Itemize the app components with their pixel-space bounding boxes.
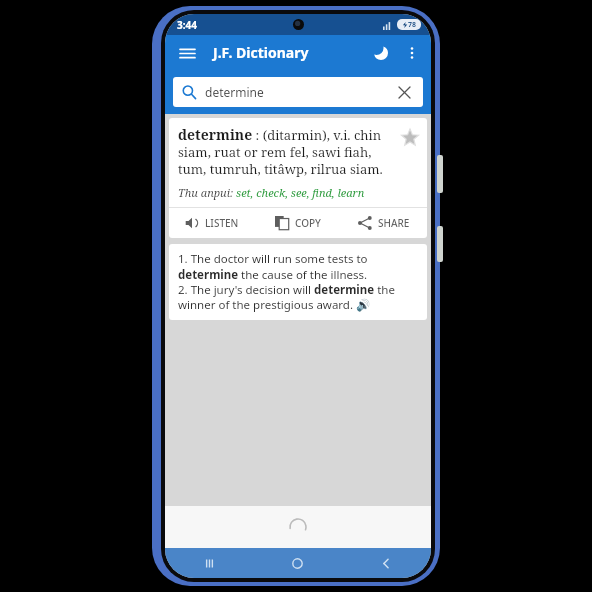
button[interactable]: More options [397, 38, 427, 68]
staticText: determine : (ditarmin), v.i. chin siam, … [178, 125, 397, 178]
button[interactable]: Toggle dark mode [365, 37, 397, 69]
staticText: LISTEN [205, 216, 239, 230]
button[interactable]: COPY [255, 208, 341, 238]
button[interactable]: Open navigation drawer [171, 37, 203, 69]
button[interactable]: LISTEN [169, 208, 255, 238]
staticText: COPY [295, 216, 321, 230]
staticText: 3:44 [177, 18, 197, 32]
button[interactable]: 1. The doctor will run some tests to det… [169, 244, 427, 320]
staticText: determine [205, 84, 264, 100]
staticText: 78 [408, 20, 417, 30]
button[interactable]: Clear search [394, 82, 414, 102]
staticText: 1. The doctor will run some tests to det… [178, 251, 418, 312]
button[interactable]: Back [342, 548, 431, 578]
button[interactable]: Recents [165, 548, 253, 578]
button[interactable]: Add to favourites [397, 125, 423, 151]
button[interactable]: Home [253, 548, 342, 578]
staticText: J.F. Dictionary [213, 43, 309, 62]
staticText: Thu anpui: set, check, see, find, learn [178, 185, 365, 200]
button[interactable]: determine : (ditarmin), v.i. chin siam, … [169, 118, 427, 238]
button[interactable]: determine [173, 77, 423, 107]
staticText: SHARE [378, 216, 410, 230]
button[interactable]: SHARE [341, 208, 427, 238]
